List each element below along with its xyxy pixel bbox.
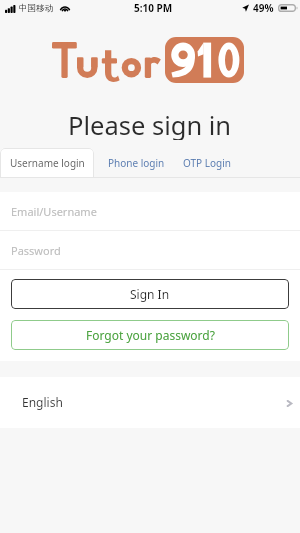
button[interactable]: Phone login bbox=[108, 156, 165, 170]
staticText: Username login bbox=[10, 156, 85, 170]
button[interactable]: OTP Login bbox=[183, 156, 231, 170]
staticText: Phone login bbox=[108, 156, 165, 170]
button[interactable]: Sign In bbox=[11, 279, 289, 309]
staticText: Sign In bbox=[130, 286, 170, 302]
staticText: Please sign in bbox=[68, 108, 232, 140]
button[interactable]: Username login bbox=[0, 148, 94, 178]
staticText: 49% bbox=[253, 1, 274, 15]
staticText: English bbox=[22, 394, 63, 410]
button[interactable]: Email/Username bbox=[0, 192, 300, 230]
other: Choose language bbox=[282, 396, 296, 410]
staticText: OTP Login bbox=[183, 156, 231, 170]
staticText: Forgot your password? bbox=[86, 327, 215, 343]
staticText: 5:10 PM bbox=[134, 1, 173, 15]
button[interactable]: Forgot your password? bbox=[11, 320, 289, 350]
staticText: Password bbox=[11, 243, 61, 258]
button[interactable]: English bbox=[0, 377, 300, 428]
staticText: Email/Username bbox=[11, 204, 97, 219]
button[interactable]: Password bbox=[0, 231, 300, 269]
staticText: 中国移动 bbox=[19, 3, 54, 14]
